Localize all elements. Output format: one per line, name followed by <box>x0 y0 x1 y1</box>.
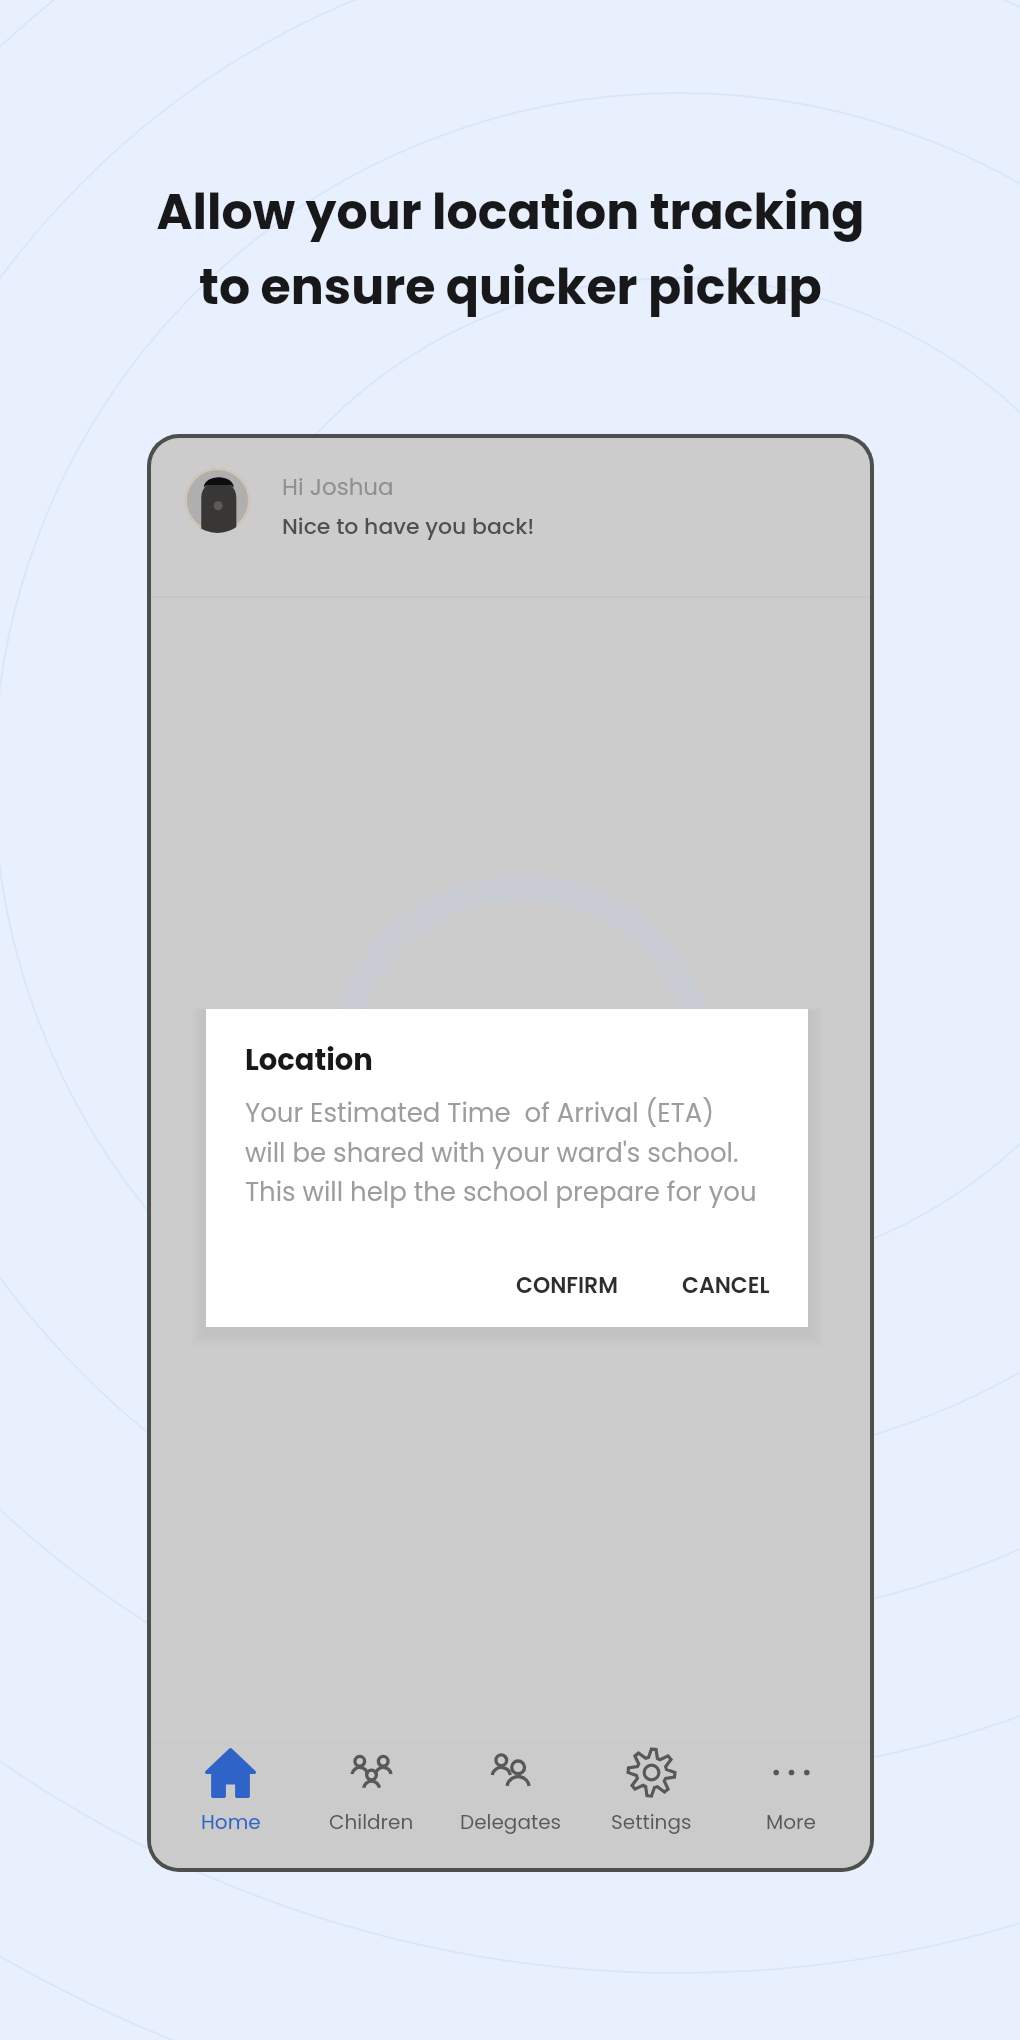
button[interactable]: Children <box>301 1747 441 1836</box>
staticText: Your Estimated Time of Arrival (ETA) wil… <box>245 1095 757 1210</box>
staticText: Nice to have you back! <box>282 511 535 542</box>
button[interactable]: Profile <box>185 468 250 533</box>
staticText: CONFIRM <box>516 1270 618 1301</box>
button[interactable]: Home <box>160 1747 301 1836</box>
staticText: Allow your location tracking to ensure q… <box>156 178 865 321</box>
button[interactable]: Delegates <box>441 1747 581 1836</box>
button[interactable]: CANCEL <box>674 1266 778 1305</box>
button[interactable]: More <box>721 1747 861 1836</box>
staticText: Delegates <box>460 1808 562 1836</box>
staticText: Hi Joshua <box>282 471 394 503</box>
staticText: Home <box>201 1808 261 1836</box>
staticText: Children <box>329 1808 414 1836</box>
button[interactable]: Settings <box>581 1747 721 1836</box>
staticText: Settings <box>611 1808 692 1836</box>
staticText: More <box>766 1808 816 1836</box>
staticText: Location <box>245 1040 373 1081</box>
staticText: CANCEL <box>682 1270 770 1301</box>
button[interactable]: CONFIRM <box>508 1266 626 1305</box>
